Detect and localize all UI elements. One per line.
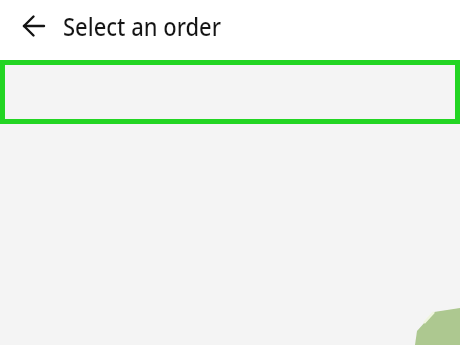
button[interactable]: [14, 6, 54, 46]
staticText: Select an order: [63, 8, 221, 43]
button[interactable]: [0, 60, 460, 124]
